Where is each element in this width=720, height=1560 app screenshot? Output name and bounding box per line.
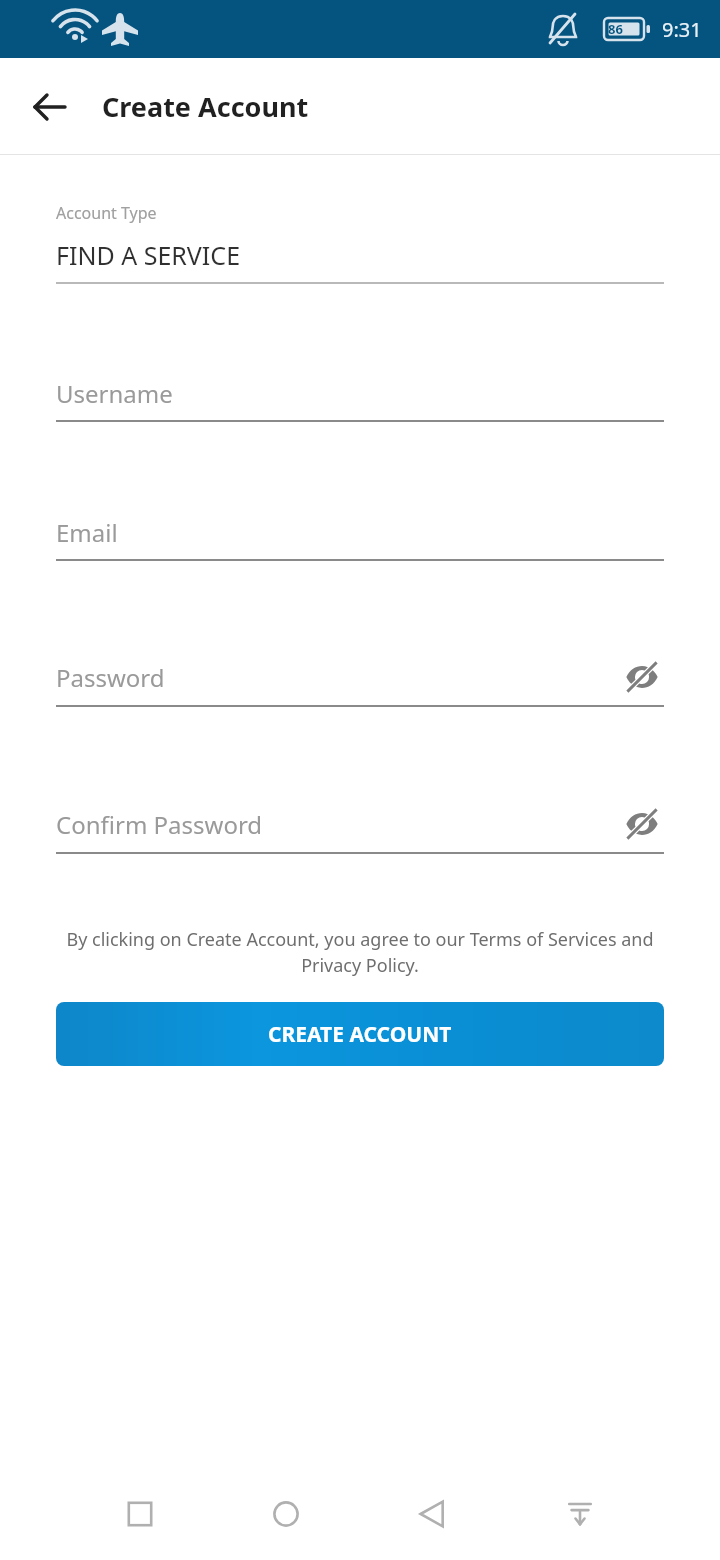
staticText: Account Type <box>56 202 157 224</box>
button[interactable]: Hide keyboard <box>552 1486 608 1542</box>
staticText: By clicking on Create Account, you agree… <box>56 927 664 977</box>
button[interactable]: Confirm Password <box>56 802 664 854</box>
staticText: Email <box>56 516 664 549</box>
button[interactable]: Email <box>56 516 664 561</box>
staticText: Confirm Password <box>56 808 620 841</box>
button[interactable]: Password <box>56 655 664 707</box>
staticText: FIND A SERVICE <box>56 238 241 272</box>
staticText: 86 <box>608 20 623 38</box>
button[interactable]: Toggle password visibility <box>620 802 664 846</box>
staticText: CREATE ACCOUNT <box>268 1020 452 1049</box>
staticText: Create Account <box>102 88 309 125</box>
button[interactable]: FIND A SERVICE <box>56 238 664 284</box>
button[interactable]: Back <box>24 81 76 133</box>
button[interactable]: Recent apps <box>112 1486 168 1542</box>
button[interactable]: Username <box>56 377 664 422</box>
staticText: Username <box>56 377 664 410</box>
button[interactable]: Back <box>405 1486 461 1542</box>
button[interactable]: Home <box>258 1486 314 1542</box>
staticText: 9:31 <box>662 16 702 43</box>
button[interactable]: Toggle password visibility <box>620 655 664 699</box>
staticText: Password <box>56 661 620 694</box>
button[interactable]: CREATE ACCOUNT <box>56 1002 664 1066</box>
